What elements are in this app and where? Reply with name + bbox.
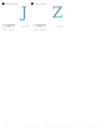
staticText: Chapter	[33, 23, 46, 28]
button[interactable]: Archive	[2, 2, 18, 6]
staticText: read	[22, 25, 29, 28]
staticText: Archive	[6, 2, 18, 6]
staticText: J	[21, 3, 27, 21]
staticText: vol. one	[33, 28, 46, 31]
staticText: read	[56, 25, 63, 28]
button[interactable]: Archive	[31, 2, 47, 6]
staticText: Archive	[35, 2, 47, 6]
staticText: vol. one	[2, 28, 15, 31]
staticText: Z	[52, 3, 63, 21]
staticText: Chapter	[2, 23, 15, 28]
